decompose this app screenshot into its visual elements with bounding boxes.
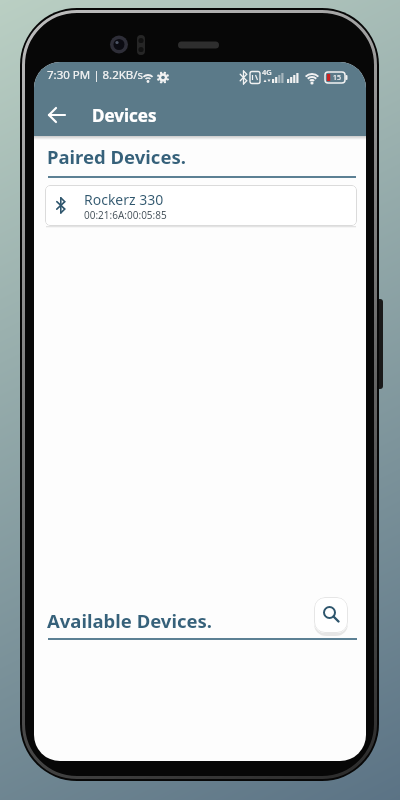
staticText: 15 bbox=[333, 73, 342, 83]
staticText: 4G bbox=[262, 67, 272, 77]
staticText: 00:21:6A:00:05:85 bbox=[84, 208, 167, 222]
staticText: Paired Devices. bbox=[47, 144, 186, 169]
staticText: Devices bbox=[92, 104, 157, 127]
staticText: Rockerz 330 bbox=[84, 190, 164, 209]
staticText: Available Devices. bbox=[47, 608, 213, 633]
staticText: 7:30 PM | 8.2KB/s bbox=[47, 67, 144, 83]
